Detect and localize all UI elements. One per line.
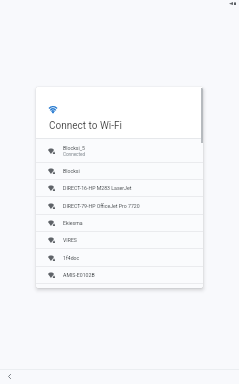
staticText: Connected <box>63 152 86 157</box>
button[interactable]: Blocksi_5 <box>36 139 203 163</box>
staticText: Connect to Wi-Fi <box>49 120 122 132</box>
staticText: 1f4doc <box>63 255 80 261</box>
staticText: VIRES <box>63 237 77 243</box>
button[interactable]: DIRECT-16-HP M283 LaserJet <box>36 180 203 197</box>
staticText: AMIS-E0102B <box>63 272 95 278</box>
staticText: Blocksi_5 <box>63 145 85 151</box>
button[interactable]: DIRECT-79-HP OfficeJet Pro 7720 <box>36 197 203 215</box>
button[interactable]: Ekiesma <box>36 215 203 232</box>
staticText: Blocksi <box>63 168 80 174</box>
button[interactable]: 1f4doc <box>36 249 203 267</box>
button[interactable]: Blocksi <box>36 163 203 180</box>
button[interactable]: Back <box>3 370 16 383</box>
staticText: Ekiesma <box>63 220 83 226</box>
staticText: DIRECT-79-HP OfficeJet Pro 7720 <box>63 203 140 209</box>
button[interactable]: VIRES <box>36 232 203 249</box>
staticText: DIRECT-16-HP M283 LaserJet <box>63 185 132 191</box>
button[interactable]: AMIS-E0102B <box>36 267 203 284</box>
